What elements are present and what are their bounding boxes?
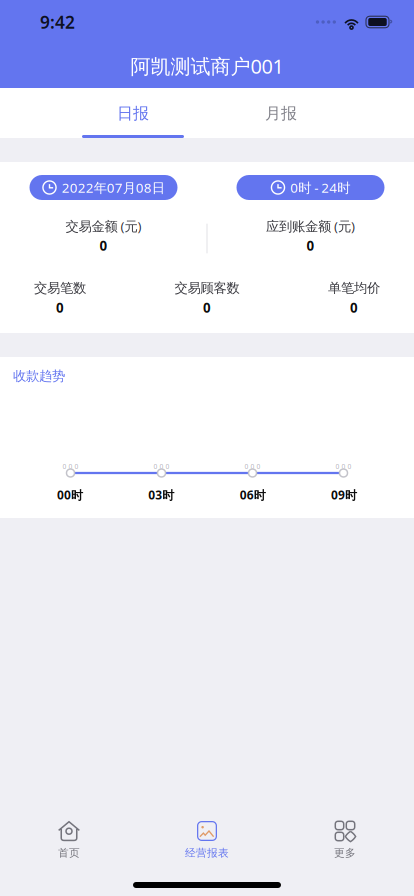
button[interactable]: 首页 (0, 805, 138, 862)
staticText: 09时 (331, 487, 357, 503)
staticText: 0 (347, 462, 351, 471)
staticText: 应到账金额 (元) (266, 217, 355, 235)
button[interactable]: 经营报表 (138, 805, 276, 862)
staticText: 0 (306, 237, 314, 254)
staticText: 0 (250, 462, 254, 471)
staticText: 首页 (58, 846, 80, 859)
staticText: 交易顾客数 (174, 280, 239, 296)
button[interactable]: 0时 - 24时 (236, 175, 384, 200)
staticText: 0 (56, 299, 64, 316)
staticText: 0 (165, 462, 169, 471)
staticText: 交易金额 (元) (65, 217, 141, 235)
staticText: 03时 (148, 487, 174, 503)
button[interactable]: 更多 (276, 805, 414, 862)
staticText: 经营报表 (185, 846, 229, 859)
staticText: 日报 (117, 104, 149, 123)
staticText: 0时 - 24时 (290, 179, 350, 196)
staticText: 0 (99, 237, 107, 254)
staticText: 阿凯测试商户001 (130, 53, 283, 79)
staticText: 0 (203, 299, 211, 316)
staticText: 月报 (265, 104, 297, 123)
staticText: 06时 (240, 487, 266, 503)
staticText: 0 (74, 462, 78, 471)
staticText: 00时 (57, 487, 83, 503)
staticText: 0 (244, 462, 248, 471)
staticText: 交易笔数 (34, 280, 86, 296)
staticText: 0 (335, 462, 339, 471)
staticText: 0 (153, 462, 157, 471)
staticText: 0 (350, 299, 358, 316)
button[interactable]: 2022年07月08日 (29, 175, 177, 200)
button[interactable]: 日报 (59, 88, 207, 138)
staticText: 收款趋势 (13, 368, 65, 384)
staticText: 9:42 (40, 10, 75, 33)
staticText: 0 (62, 462, 66, 471)
staticText: 更多 (334, 846, 356, 859)
button[interactable]: 月报 (207, 88, 355, 138)
staticText: 2022年07月08日 (62, 179, 165, 196)
staticText: 0 (159, 462, 163, 471)
staticText: 0 (68, 462, 72, 471)
staticText: 单笔均价 (328, 280, 380, 296)
staticText: 0 (341, 462, 345, 471)
staticText: 0 (256, 462, 260, 471)
